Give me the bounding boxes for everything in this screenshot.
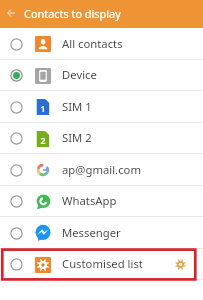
- staticText: SIM 1: [62, 99, 92, 114]
- button[interactable]: All contacts: [0, 28, 203, 60]
- button[interactable]: Edit list: [175, 259, 186, 270]
- staticText: Messenger: [62, 225, 121, 240]
- button[interactable]: 2: [0, 123, 203, 154]
- button[interactable]: Device: [0, 60, 203, 91]
- button[interactable]: ap@gmail.com: [0, 154, 203, 186]
- staticText: WhatsApp: [62, 193, 117, 208]
- staticText: Device: [62, 67, 97, 82]
- button[interactable]: Messenger: [0, 217, 203, 249]
- button[interactable]: Customised list: [0, 249, 203, 280]
- staticText: 2: [40, 135, 46, 147]
- staticText: ap@gmail.com: [62, 162, 141, 177]
- staticText: SIM 2: [62, 130, 92, 145]
- staticText: 1: [40, 103, 46, 115]
- button[interactable]: Back: [1, 3, 21, 23]
- staticText: Contacts to display: [24, 6, 121, 21]
- button[interactable]: WhatsApp: [0, 186, 203, 217]
- staticText: All contacts: [62, 36, 123, 51]
- button[interactable]: 1: [0, 91, 203, 123]
- staticText: Customised list: [62, 256, 143, 271]
